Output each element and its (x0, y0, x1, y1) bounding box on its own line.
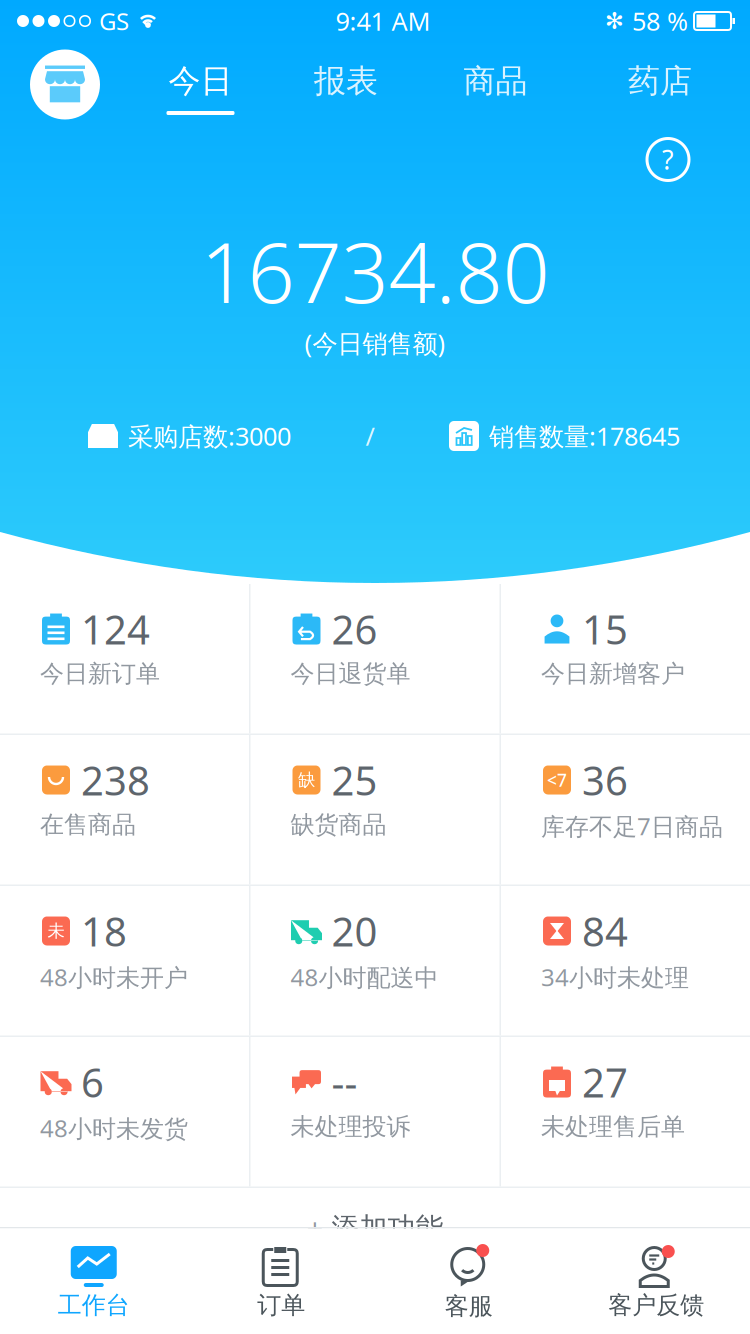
staticText: ? (662, 142, 674, 177)
button[interactable]: 缺 (250, 735, 499, 884)
button[interactable]: 今日 (130, 42, 271, 127)
staticText: 未处理投诉 (290, 1112, 410, 1141)
staticText: 27 (582, 1055, 628, 1108)
staticText: 18 (81, 904, 127, 957)
button[interactable]: 客服 (375, 1228, 562, 1334)
staticText: 84 (582, 904, 628, 957)
staticText: 34小时未处理 (541, 961, 689, 993)
staticText: 今日新订单 (40, 659, 160, 688)
button[interactable]: + (0, 1188, 750, 1268)
staticText: 25 (331, 753, 377, 806)
button[interactable]: 未 (0, 886, 249, 1035)
staticText: 124 (81, 602, 150, 655)
staticText: 今日 (168, 61, 232, 101)
button[interactable]: -- (250, 1037, 499, 1186)
staticText: 15 (582, 602, 628, 655)
button[interactable]: <7 (501, 735, 750, 884)
staticText: <7 (547, 768, 567, 791)
button[interactable]: 15 (501, 584, 750, 733)
staticText: 未 (47, 920, 64, 942)
staticText: 库存不足7日商品 (541, 810, 723, 842)
button[interactable]: 商品 (421, 42, 570, 127)
staticText: GS (99, 5, 129, 37)
staticText: ✻ (605, 8, 624, 34)
button[interactable]: 26 (250, 584, 499, 733)
staticText: 48小时未发货 (40, 1112, 188, 1144)
staticText: 20 (331, 904, 377, 957)
staticText: -- (331, 1055, 357, 1108)
button[interactable]: 工作台 (0, 1228, 187, 1334)
button[interactable]: 店铺 (0, 42, 130, 127)
staticText: 未处理售后单 (541, 1112, 685, 1141)
button[interactable]: 报表 (271, 42, 421, 127)
button[interactable]: 84 (501, 886, 750, 1035)
button[interactable]: 27 (501, 1037, 750, 1186)
staticText: 缺 (298, 769, 315, 791)
staticText: 客服 (445, 1291, 493, 1321)
staticText: 48小时未开户 (40, 961, 188, 993)
staticText: 订单 (257, 1290, 305, 1320)
staticText: 238 (81, 753, 150, 806)
button[interactable]: 客户反馈 (562, 1228, 750, 1334)
staticText: 采购店数:3000 (128, 419, 291, 453)
button[interactable]: 帮助 (645, 136, 691, 182)
staticText: (今日销售额) (304, 326, 445, 360)
button[interactable]: 238 (0, 735, 249, 884)
staticText: + (306, 1208, 323, 1247)
staticText: 6 (81, 1055, 104, 1108)
staticText: 销售数量:178645 (489, 419, 680, 453)
staticText: 商品 (463, 61, 527, 101)
button[interactable]: 订单 (187, 1228, 375, 1334)
staticText: 36 (582, 753, 628, 806)
button[interactable]: 药店 (570, 42, 750, 127)
staticText: 添加功能 (331, 1211, 443, 1245)
button[interactable]: 6 (0, 1037, 249, 1186)
staticText: 9:41 AM (335, 4, 430, 38)
staticText: 今日退货单 (290, 659, 410, 688)
staticText: 58 % (632, 4, 688, 38)
staticText: 在售商品 (40, 810, 136, 839)
staticText: 48小时配送中 (290, 961, 438, 993)
staticText: 工作台 (58, 1290, 130, 1320)
staticText: 今日新增客户 (541, 659, 685, 688)
staticText: 报表 (314, 61, 378, 101)
button[interactable]: 124 (0, 584, 249, 733)
staticText: 药店 (628, 61, 692, 101)
button[interactable]: 20 (250, 886, 499, 1035)
staticText: 26 (331, 602, 377, 655)
staticText: / (365, 419, 374, 453)
staticText: 16734.80 (200, 216, 549, 326)
staticText: 缺货商品 (290, 810, 386, 839)
staticText: 客户反馈 (608, 1290, 704, 1320)
